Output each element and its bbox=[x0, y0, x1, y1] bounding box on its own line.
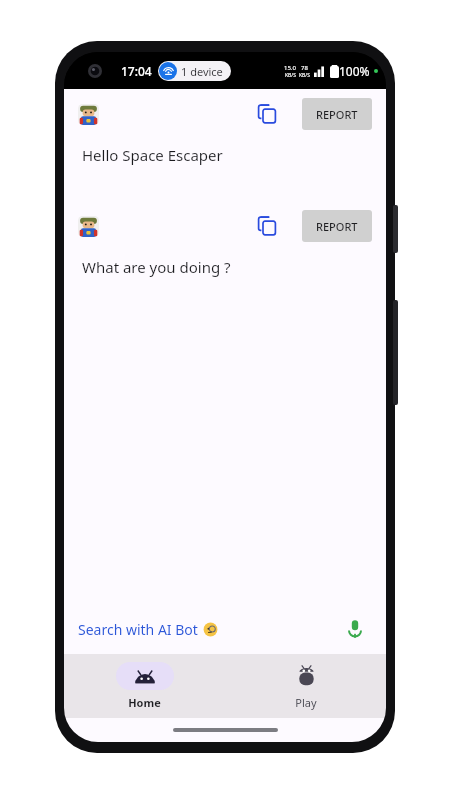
staticText: REPORT bbox=[316, 107, 358, 122]
staticText: What are you doing ? bbox=[82, 257, 231, 277]
staticText: Home bbox=[128, 695, 161, 710]
button[interactable]: Voice search bbox=[338, 612, 372, 646]
button[interactable]: REPORT bbox=[302, 98, 372, 130]
staticText: 100% bbox=[339, 63, 370, 79]
staticText: REPORT bbox=[316, 219, 358, 234]
staticText: Play bbox=[295, 695, 317, 710]
staticText: 78 bbox=[301, 64, 308, 72]
button[interactable]: Search with AI Bot bbox=[78, 610, 338, 648]
staticText: KB/S bbox=[285, 72, 296, 79]
button[interactable]: Home bbox=[64, 654, 225, 718]
staticText: Search with AI Bot bbox=[78, 620, 198, 639]
staticText: 15.0 bbox=[284, 64, 296, 72]
button[interactable]: Copy message bbox=[250, 209, 284, 243]
staticText: Hello Space Escaper bbox=[82, 145, 223, 165]
staticText: KB/S bbox=[299, 72, 310, 79]
button[interactable]: Play bbox=[225, 654, 386, 718]
button[interactable]: REPORT bbox=[302, 210, 372, 242]
button[interactable]: 1 device bbox=[158, 61, 231, 81]
staticText: 1 device bbox=[181, 64, 223, 79]
button[interactable]: Copy message bbox=[250, 97, 284, 131]
staticText: 17:04 bbox=[121, 63, 152, 79]
